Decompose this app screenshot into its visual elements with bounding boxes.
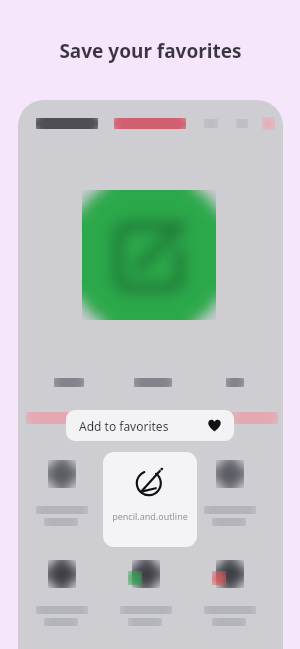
staticText: Add to favorites: [79, 418, 169, 434]
button[interactable]: Add to favorites: [66, 410, 234, 441]
staticText: Save your favorites: [59, 38, 242, 64]
other: pencil.and.outline: [130, 462, 170, 502]
staticText: pencil.and.outline: [112, 510, 188, 522]
button[interactable]: pencil.and.outline: [103, 452, 197, 547]
